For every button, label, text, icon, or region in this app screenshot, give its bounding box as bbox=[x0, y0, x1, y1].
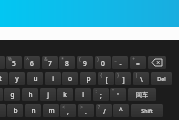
staticText: k bbox=[63, 90, 67, 99]
button[interactable]: o bbox=[62, 72, 78, 85]
button[interactable]: % bbox=[6, 56, 22, 69]
button[interactable]: Shift bbox=[131, 104, 163, 117]
button[interactable]: Backspace bbox=[148, 56, 166, 69]
staticText: % bbox=[8, 56, 12, 62]
staticText: | bbox=[135, 72, 138, 78]
staticText: : bbox=[95, 88, 97, 94]
button[interactable]: | bbox=[133, 72, 149, 85]
button[interactable]: u bbox=[27, 72, 43, 85]
staticText: ] bbox=[122, 75, 125, 84]
button[interactable]: g bbox=[4, 88, 20, 101]
staticText: i bbox=[52, 74, 54, 83]
button[interactable]: f bbox=[0, 88, 3, 101]
staticText: 0 bbox=[101, 59, 105, 68]
staticText: l bbox=[82, 90, 84, 99]
staticText: 6 bbox=[30, 59, 34, 68]
staticText: < bbox=[62, 104, 65, 110]
button[interactable]: m bbox=[43, 104, 59, 117]
button[interactable]: t bbox=[0, 72, 8, 85]
staticText: ; bbox=[100, 91, 102, 100]
staticText: ^ bbox=[119, 106, 123, 115]
staticText: 5 bbox=[12, 59, 16, 68]
staticText: ( bbox=[79, 56, 81, 62]
staticText: } bbox=[117, 72, 119, 78]
staticText: _ bbox=[114, 56, 117, 62]
staticText: o bbox=[68, 74, 72, 83]
button[interactable]: * bbox=[59, 56, 75, 69]
staticText: [ bbox=[105, 75, 108, 84]
staticText: \ bbox=[140, 75, 143, 84]
staticText: j bbox=[47, 90, 49, 99]
button[interactable]: 回车 bbox=[128, 88, 156, 101]
button[interactable]: ^ bbox=[24, 56, 40, 69]
staticText: > bbox=[80, 104, 83, 110]
staticText: 9 bbox=[83, 59, 87, 68]
staticText: Del bbox=[157, 75, 166, 82]
button[interactable]: n bbox=[25, 104, 41, 117]
button[interactable]: k bbox=[57, 88, 73, 101]
staticText: , bbox=[67, 107, 69, 116]
button[interactable]: ? bbox=[96, 104, 112, 117]
staticText: 7 bbox=[48, 59, 52, 68]
button[interactable]: p bbox=[80, 72, 96, 85]
button[interactable]: ( bbox=[77, 56, 93, 69]
button[interactable]: j bbox=[40, 88, 56, 101]
button[interactable]: < bbox=[60, 104, 76, 117]
staticText: * bbox=[61, 56, 64, 62]
button[interactable]: + bbox=[130, 56, 146, 69]
staticText: b bbox=[13, 106, 18, 115]
staticText: " bbox=[112, 88, 114, 94]
staticText: + bbox=[132, 56, 135, 62]
button[interactable]: i bbox=[45, 72, 61, 85]
button[interactable]: l bbox=[75, 88, 91, 101]
button[interactable]: h bbox=[22, 88, 38, 101]
staticText: { bbox=[100, 72, 102, 78]
button[interactable]: ) bbox=[95, 56, 111, 69]
button[interactable]: Del bbox=[151, 72, 172, 85]
button[interactable]: { bbox=[98, 72, 114, 85]
staticText: y bbox=[15, 74, 19, 83]
staticText: m bbox=[48, 106, 55, 115]
button[interactable]: & bbox=[42, 56, 58, 69]
staticText: . bbox=[85, 107, 87, 116]
button[interactable]: : bbox=[93, 88, 109, 101]
button[interactable]: } bbox=[115, 72, 131, 85]
staticText: n bbox=[31, 106, 36, 115]
staticText: ? bbox=[98, 104, 100, 110]
staticText: - bbox=[119, 59, 122, 68]
staticText: 8 bbox=[65, 59, 69, 68]
staticText: ) bbox=[97, 56, 99, 62]
button[interactable]: " bbox=[110, 88, 126, 101]
staticText: g bbox=[10, 90, 15, 99]
button[interactable]: > bbox=[78, 104, 94, 117]
staticText: Shift bbox=[141, 107, 153, 114]
staticText: 回车 bbox=[136, 91, 148, 99]
button[interactable]: _ bbox=[112, 56, 128, 69]
button[interactable]: ^ bbox=[113, 104, 129, 117]
staticText: t bbox=[0, 74, 2, 83]
button[interactable]: y bbox=[9, 72, 25, 85]
button[interactable]: v bbox=[0, 104, 6, 117]
staticText: ^ bbox=[26, 56, 29, 62]
staticText: u bbox=[33, 74, 38, 83]
staticText: ' bbox=[117, 91, 119, 100]
staticText: = bbox=[136, 59, 140, 68]
staticText: & bbox=[44, 56, 48, 62]
staticText: h bbox=[28, 90, 33, 99]
button[interactable]: $ bbox=[0, 56, 5, 69]
staticText: / bbox=[103, 107, 106, 116]
staticText: p bbox=[86, 74, 91, 83]
button[interactable]: b bbox=[7, 104, 23, 117]
